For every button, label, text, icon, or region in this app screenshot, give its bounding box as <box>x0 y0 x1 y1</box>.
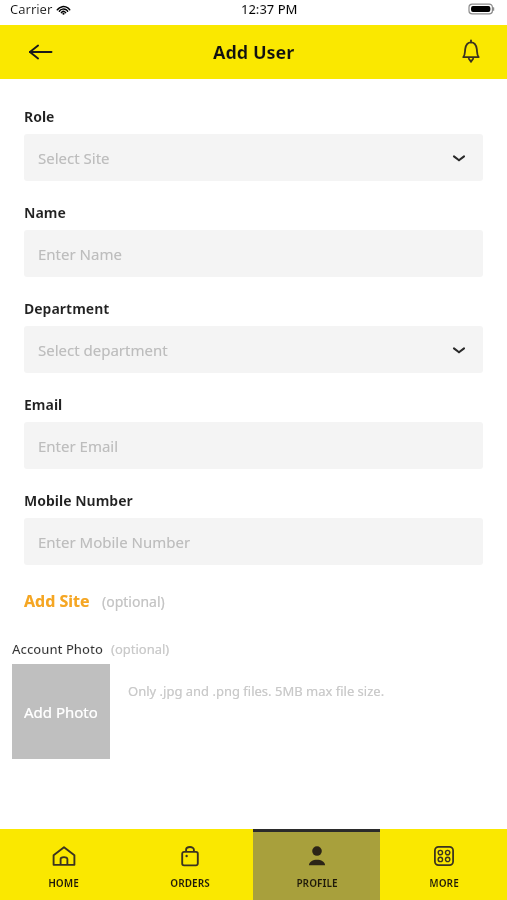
staticText: (optional) <box>111 640 170 658</box>
staticText: HOME <box>48 876 79 890</box>
staticText: Add Site <box>24 590 90 612</box>
staticText: Name <box>24 203 66 222</box>
staticText: Email <box>24 395 63 414</box>
button[interactable]: Notifications <box>449 30 493 74</box>
staticText: Only .jpg and .png files. 5MB max file s… <box>128 682 385 700</box>
staticText: (optional) <box>102 592 165 611</box>
staticText: Enter Mobile Number <box>38 532 191 552</box>
staticText: Select department <box>38 340 168 360</box>
button[interactable]: Add Site <box>24 590 165 612</box>
staticText: Carrier <box>10 0 53 18</box>
staticText: Add Photo <box>24 702 98 722</box>
staticText: Role <box>24 107 55 126</box>
button[interactable]: Enter Email <box>24 422 483 469</box>
button[interactable]: Back <box>18 30 62 74</box>
button[interactable]: HOME <box>0 829 126 900</box>
staticText: MORE <box>429 876 459 890</box>
button[interactable]: MORE <box>380 829 507 900</box>
staticText: Account Photo <box>12 640 103 658</box>
button[interactable]: Add Photo <box>12 664 110 759</box>
button[interactable]: Enter Mobile Number <box>24 518 483 565</box>
button[interactable]: Select department <box>24 326 483 373</box>
staticText: Mobile Number <box>24 491 133 510</box>
staticText: Enter Email <box>38 436 119 456</box>
button[interactable]: Select Site <box>24 134 483 181</box>
staticText: Enter Name <box>38 244 122 264</box>
button[interactable]: Enter Name <box>24 230 483 277</box>
staticText: Department <box>24 299 110 318</box>
staticText: PROFILE <box>296 876 338 890</box>
button[interactable]: ORDERS <box>126 829 253 900</box>
button[interactable]: PROFILE <box>253 829 380 900</box>
staticText: Select Site <box>38 148 110 168</box>
staticText: ORDERS <box>170 876 210 890</box>
staticText: Add User <box>213 40 295 65</box>
staticText: 12:37 PM <box>241 0 298 18</box>
